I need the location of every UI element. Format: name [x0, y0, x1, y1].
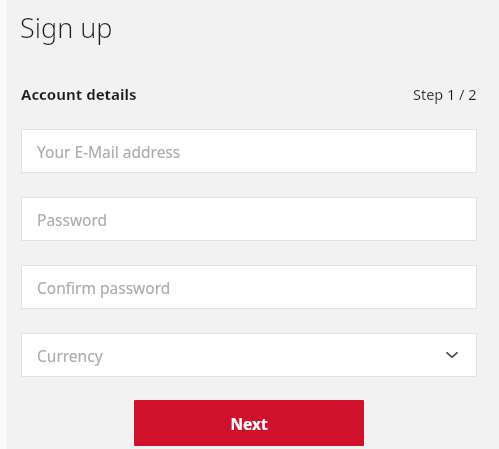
- button[interactable]: Next: [134, 400, 364, 446]
- staticText: Confirm password: [37, 277, 171, 298]
- button[interactable]: Your E-Mail address: [21, 129, 477, 173]
- staticText: Account details: [21, 84, 137, 104]
- staticText: Password: [37, 209, 108, 230]
- other: Open currency list: [444, 347, 460, 363]
- button[interactable]: Confirm password: [21, 265, 477, 309]
- staticText: Next: [230, 413, 268, 434]
- staticText: Your E-Mail address: [37, 141, 181, 162]
- button[interactable]: Currency: [21, 333, 477, 377]
- staticText: Step 1 / 2: [413, 84, 477, 104]
- staticText: Currency: [37, 345, 103, 366]
- staticText: Sign up: [20, 9, 113, 46]
- button[interactable]: Password: [21, 197, 477, 241]
